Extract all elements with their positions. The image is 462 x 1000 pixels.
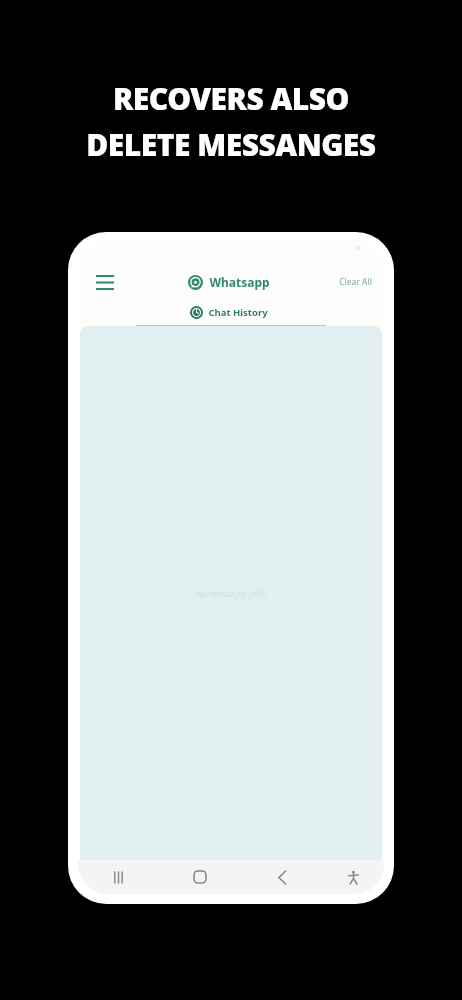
staticText: DELETE MESSANGES [86, 124, 376, 165]
staticText: Whatsapp [209, 274, 270, 290]
button[interactable]: Recents [78, 860, 159, 894]
staticText: RECOVERS ALSO [113, 78, 349, 119]
staticText: No messages yet!!! [196, 588, 267, 599]
button[interactable]: Menu [88, 265, 122, 299]
button[interactable]: Back [241, 860, 323, 894]
staticText: Chat History [208, 306, 268, 319]
button[interactable]: Whatsapp [188, 274, 270, 290]
button[interactable]: Home [159, 860, 241, 894]
button[interactable]: Chat History [190, 306, 268, 319]
button[interactable]: Clear All [333, 272, 378, 292]
staticText: Clear All [339, 276, 372, 288]
button[interactable]: Accessibility [323, 860, 384, 894]
